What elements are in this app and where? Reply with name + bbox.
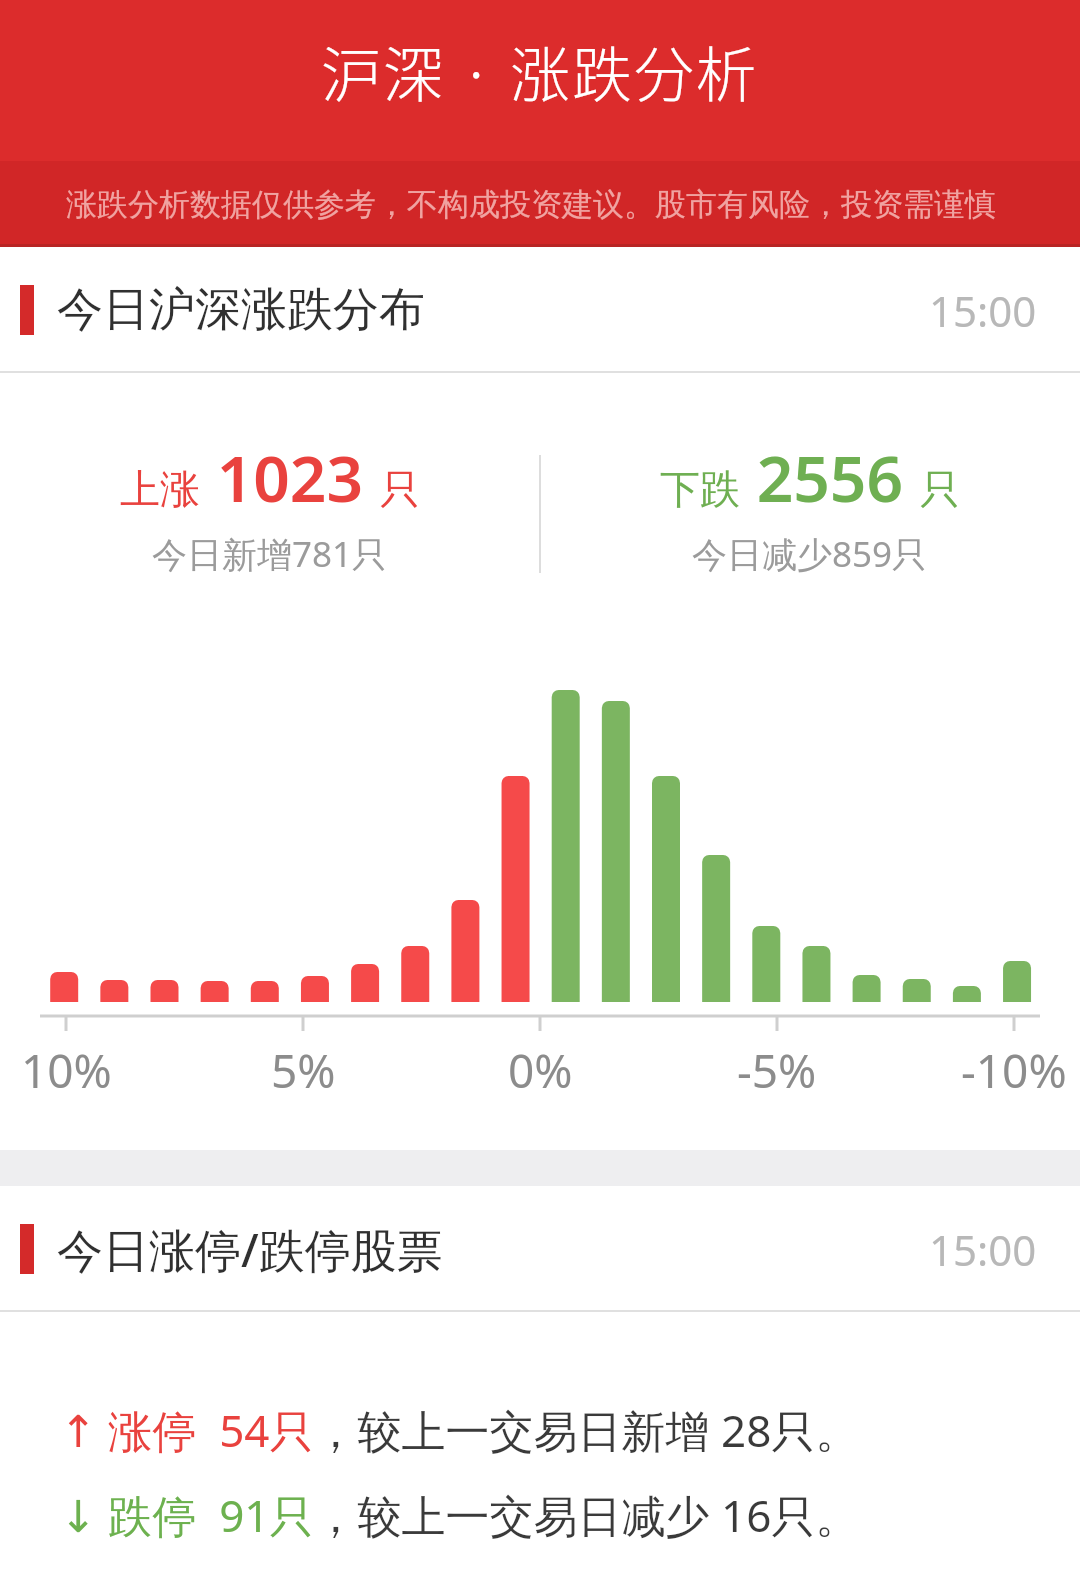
staticText: -5%: [737, 1039, 817, 1102]
staticText: 下跌: [660, 464, 740, 514]
staticText: 5%: [271, 1039, 336, 1102]
staticText: 0%: [508, 1039, 573, 1102]
staticText: 2556: [740, 434, 920, 521]
staticText: 今日涨停/跌停股票: [57, 1218, 443, 1281]
button[interactable]: 上涨: [0, 430, 540, 590]
staticText: 只: [920, 464, 960, 514]
staticText: 上涨: [120, 464, 200, 514]
staticText: 1023: [200, 434, 380, 521]
button[interactable]: 下跌: [540, 430, 1080, 590]
button[interactable]: ↓ 跌停 91只，较上一交易日减少 16只。: [60, 1480, 860, 1550]
staticText: 涨跌分析数据仅供参考，不构成投资建议。股市有风险，投资需谨慎: [66, 185, 996, 224]
staticText: 15:00: [929, 282, 1037, 339]
staticText: 今日新增781只: [152, 530, 388, 578]
staticText: 沪深 · 涨跌分析: [321, 27, 759, 114]
staticText: ↓ 跌停 91只，较上一交易日减少 16只。: [60, 1485, 860, 1545]
button[interactable]: 沪深 · 涨跌分析: [0, 0, 1080, 161]
staticText: ↑ 涨停 54只，较上一交易日新增 28只。: [60, 1400, 860, 1460]
staticText: 15:00: [929, 1221, 1037, 1278]
button[interactable]: 今日涨停/跌停股票: [0, 1186, 1080, 1312]
staticText: 今日减少859只: [692, 530, 928, 578]
staticText: 今日沪深涨跌分布: [57, 281, 425, 339]
staticText: 只: [380, 464, 420, 514]
button[interactable]: 今日沪深涨跌分布: [0, 247, 1080, 373]
staticText: -10%: [961, 1039, 1067, 1102]
staticText: 10%: [21, 1039, 112, 1102]
button[interactable]: ↑ 涨停 54只，较上一交易日新增 28只。: [60, 1395, 860, 1465]
